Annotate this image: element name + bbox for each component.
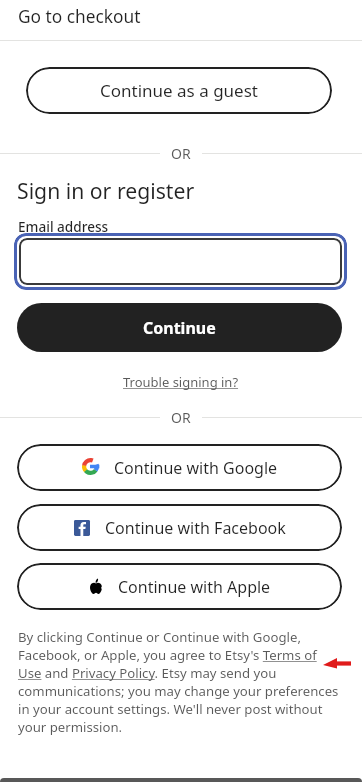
staticText: Sign in or register <box>17 176 195 205</box>
button[interactable]: Continue with Google <box>17 444 342 491</box>
staticText: Continue with Google <box>114 457 278 479</box>
button[interactable]: Continue with Facebook <box>17 504 342 551</box>
staticText: OR <box>171 408 191 427</box>
button[interactable]: Continue <box>17 303 342 352</box>
button[interactable]: Continue with Apple <box>17 563 342 610</box>
other: Annotation arrow <box>0 0 362 782</box>
staticText: OR <box>171 144 191 163</box>
staticText: Trouble signing in? <box>123 373 239 391</box>
staticText: Email address <box>18 217 109 236</box>
button[interactable]: Continue as a guest <box>26 67 332 114</box>
button[interactable] <box>19 238 342 285</box>
staticText: By clicking Continue or Continue with Go… <box>18 628 342 736</box>
staticText: Continue <box>143 317 216 339</box>
staticText: Continue as a guest <box>100 79 258 102</box>
button[interactable]: Go to checkout <box>0 0 362 40</box>
staticText: Continue with Apple <box>118 576 271 598</box>
staticText: Go to checkout <box>18 5 141 29</box>
staticText: Continue with Facebook <box>105 517 286 539</box>
button[interactable]: Trouble signing in? <box>123 373 239 391</box>
